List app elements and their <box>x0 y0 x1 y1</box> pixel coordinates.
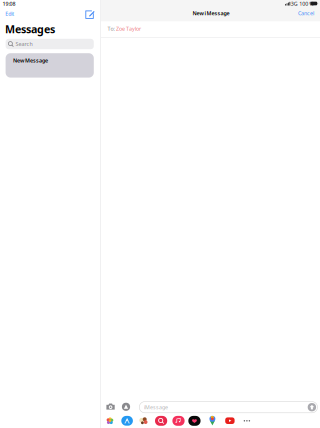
staticText: 100 % <box>299 0 313 7</box>
staticText: New iMessage <box>192 10 229 17</box>
staticText: Zoe Taylor <box>116 25 141 32</box>
staticText: Edit <box>5 10 14 17</box>
staticText: To: <box>107 25 114 32</box>
button[interactable]: Send <box>308 403 316 411</box>
staticText: 3G <box>291 0 298 7</box>
staticText: Cancel <box>298 10 314 17</box>
staticText: iMessage <box>144 404 168 411</box>
staticText: New Message <box>13 57 48 64</box>
staticText: 19:08 <box>2 0 15 7</box>
button[interactable]: Search <box>0 0 88 10</box>
button[interactable]: Compose <box>0 0 10 10</box>
staticText: Search <box>15 40 32 48</box>
button[interactable]: Edit <box>0 0 14 6</box>
button[interactable]: New Message <box>0 0 88 24</box>
staticText: Messages <box>5 22 55 36</box>
